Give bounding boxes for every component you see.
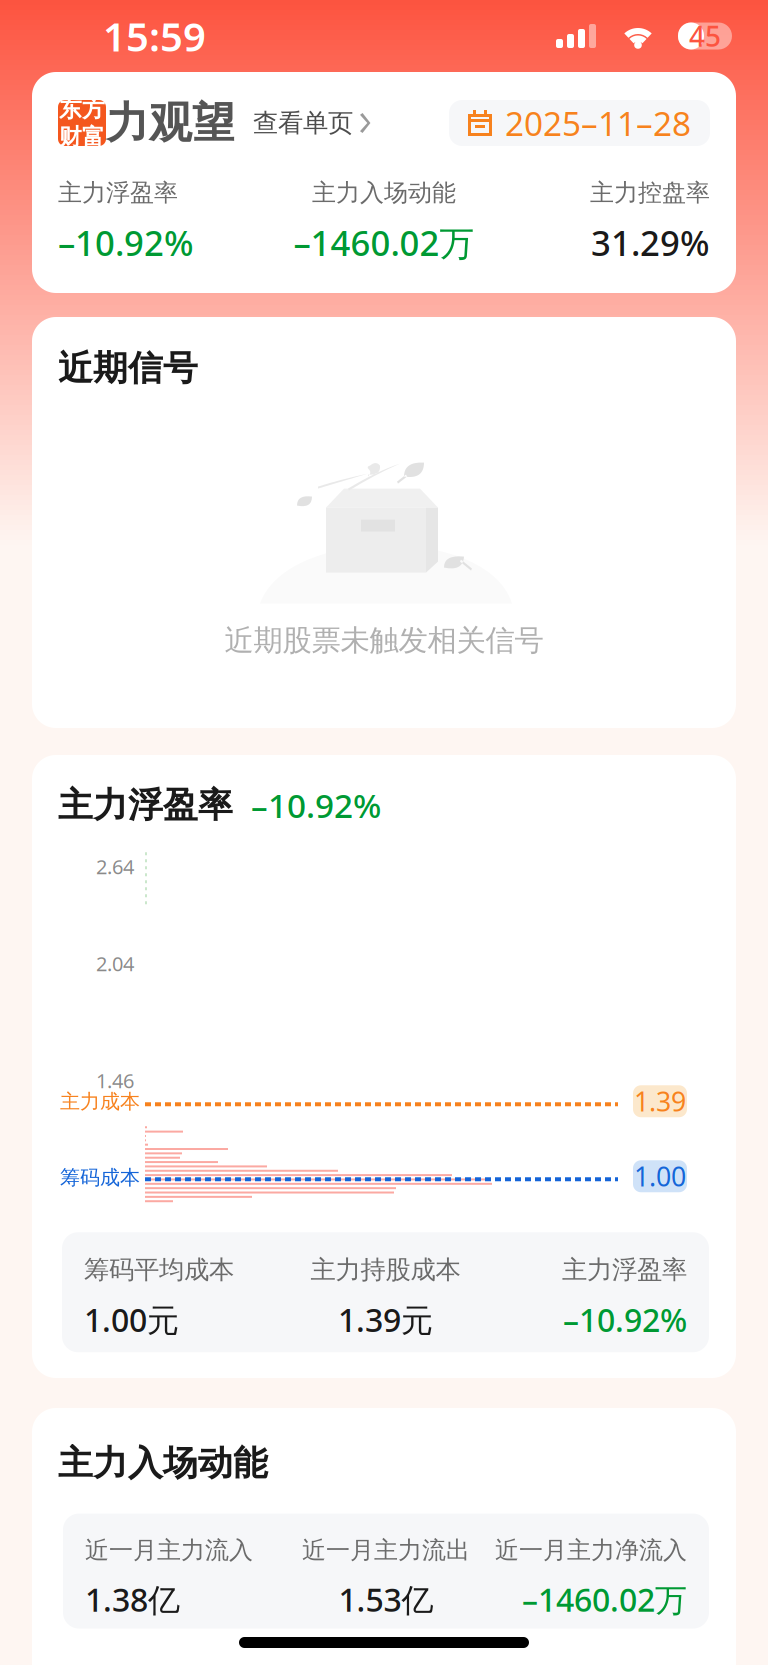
staticText: 主力浮盈率 [562,1254,687,1285]
staticText: 主力浮盈率 [58,784,233,826]
button[interactable]: 查看单页 [253,107,371,138]
staticText: 1.39 [634,1084,686,1119]
staticText: 主力成本 [60,1089,140,1114]
staticText: 2025–11–28 [505,101,691,145]
staticText: 近一月主力流入 [85,1536,253,1565]
staticText: 近一月主力净流入 [495,1536,687,1565]
staticText: 2.04 [96,950,134,977]
staticText: 主力控盘率 [590,178,710,207]
staticText: –10.92% [563,1298,687,1341]
staticText: 近期信号 [58,347,198,390]
staticText: 1.00 [634,1159,686,1194]
staticText: 筹码平均成本 [84,1254,234,1285]
staticText: 筹码成本 [60,1165,140,1190]
staticText: 力观望 [106,97,235,149]
staticText: 近一月主力流出 [302,1536,470,1565]
staticText: 45 [689,17,721,55]
staticText: –1460.02万 [293,219,474,265]
staticText: 财富 [59,123,105,151]
staticText: 15:59 [103,9,206,62]
staticText: 主力入场动能 [58,1442,268,1485]
staticText: 1.53亿 [338,1578,433,1621]
staticText: 主力浮盈率 [58,178,178,207]
staticText: 1.46 [96,1067,134,1094]
staticText: 查看单页 [253,107,353,138]
staticText: 主力持股成本 [310,1254,460,1285]
staticText: 1.00元 [84,1298,179,1341]
staticText: –1460.02万 [522,1578,687,1621]
staticText: 主力入场动能 [312,178,456,207]
staticText: 31.29% [591,219,710,265]
staticText: 近期股票未触发相关信号 [224,623,543,659]
staticText: 东方 [59,95,105,123]
staticText: –10.92% [251,783,381,827]
staticText: 1.39元 [338,1298,433,1341]
staticText: 2.64 [96,853,134,880]
button[interactable]: 2025–11–28 [449,100,710,146]
staticText: 1.38亿 [85,1578,180,1621]
staticText: –10.92% [58,219,194,265]
